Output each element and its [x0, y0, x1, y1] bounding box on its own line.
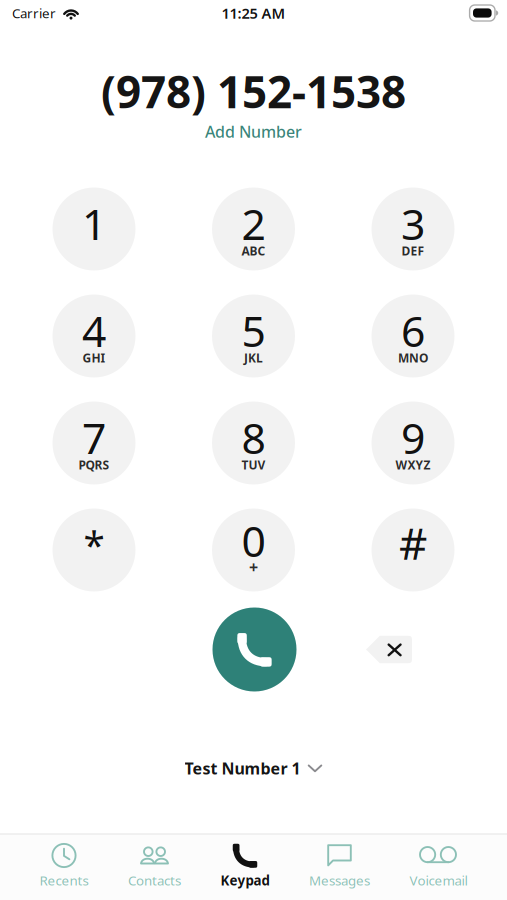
button[interactable]: Delete [365, 635, 412, 664]
staticText: + [249, 556, 258, 578]
staticText: Recents [39, 871, 88, 889]
staticText: 1 [82, 195, 106, 252]
staticText: PQRS [78, 457, 109, 473]
button[interactable]: Messages [309, 834, 370, 900]
staticText: Carrier [12, 4, 56, 22]
staticText: Messages [309, 871, 370, 889]
staticText: * [83, 518, 104, 570]
staticText: 5 [241, 302, 265, 359]
staticText: 9 [401, 409, 425, 466]
staticText: Test Number 1 [184, 758, 300, 779]
staticText: MNO [398, 350, 428, 366]
button[interactable]: * [52, 508, 135, 591]
button[interactable]: 0 [212, 508, 295, 591]
staticText: Voicemail [409, 871, 467, 889]
button[interactable]: 2 [212, 187, 295, 270]
button[interactable]: 7 [52, 401, 135, 484]
button[interactable]: 4 [52, 294, 135, 377]
button[interactable]: 9 [371, 401, 454, 484]
staticText: (978) 152-1538 [101, 62, 406, 120]
button[interactable]: 5 [212, 294, 295, 377]
button[interactable]: Add Number [189, 114, 318, 149]
staticText: 7 [82, 409, 106, 466]
button[interactable]: Voicemail [409, 834, 467, 900]
staticText: 6 [401, 302, 425, 359]
button[interactable]: Call [212, 607, 296, 691]
button[interactable]: 6 [371, 294, 454, 377]
button[interactable]: 1 [52, 187, 135, 270]
staticText: 2 [241, 195, 265, 252]
staticText: TUV [241, 457, 265, 473]
staticText: 11:25 AM [221, 3, 285, 23]
button[interactable]: Test Number 1 [170, 748, 336, 789]
staticText: 3 [401, 195, 425, 252]
staticText: Keypad [220, 871, 269, 889]
button[interactable]: 8 [212, 401, 295, 484]
staticText: Add Number [205, 121, 302, 142]
staticText: 4 [82, 302, 106, 359]
staticText: GHI [82, 350, 105, 366]
button[interactable]: Recents [39, 834, 88, 900]
button[interactable]: 3 [371, 187, 454, 270]
staticText: ABC [241, 243, 265, 259]
button[interactable]: # [371, 508, 454, 591]
button[interactable]: Keypad [220, 834, 269, 900]
staticText: WXYZ [395, 457, 430, 473]
staticText: DEF [401, 243, 424, 259]
staticText: JKL [244, 350, 263, 366]
button[interactable]: Contacts [128, 834, 181, 900]
staticText: Contacts [128, 871, 181, 889]
staticText: 8 [241, 409, 265, 466]
staticText: 0 [241, 512, 265, 569]
staticText: # [399, 513, 427, 572]
